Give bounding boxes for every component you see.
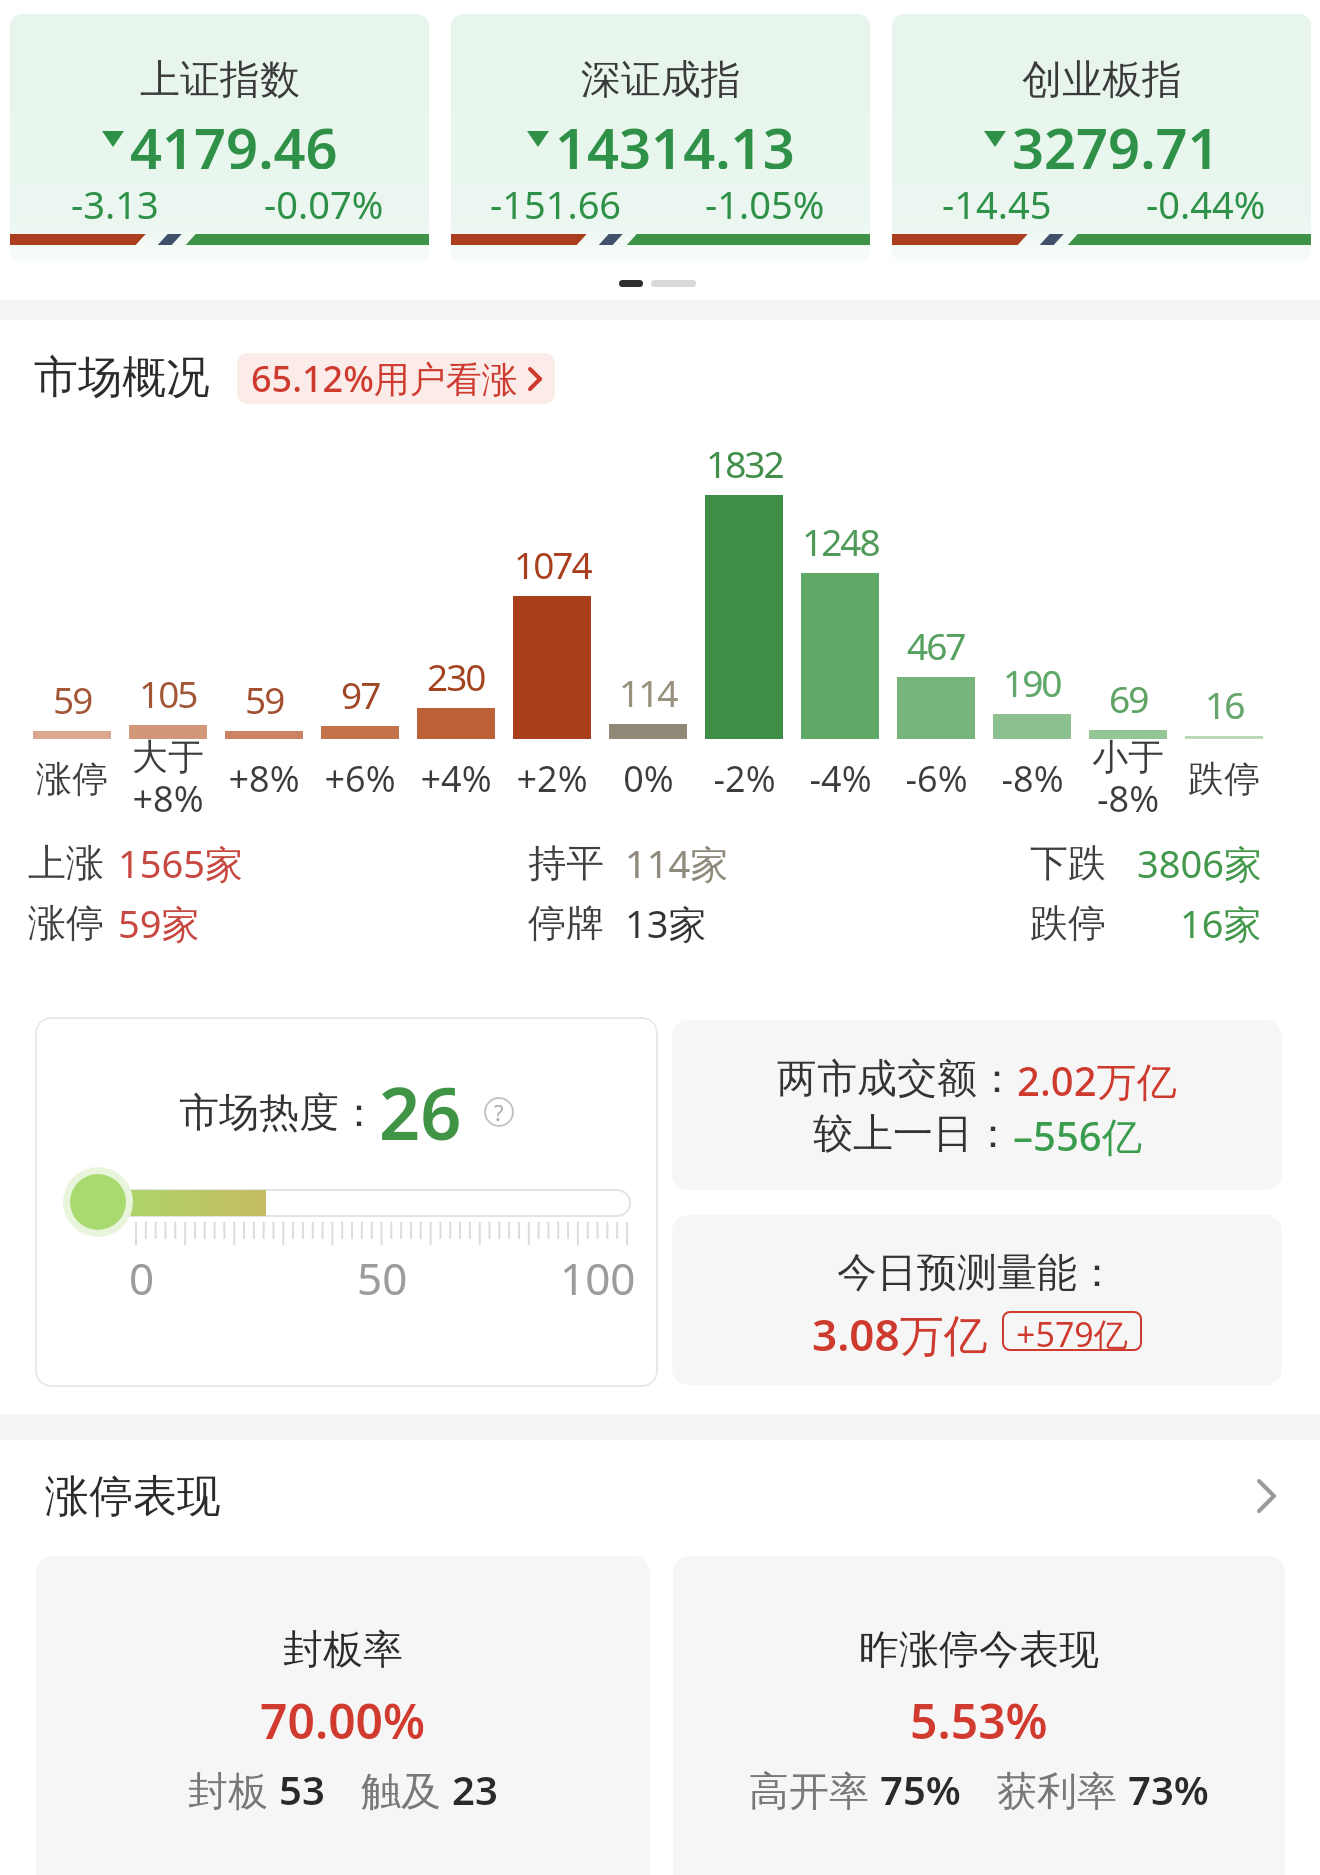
staticText: 73% — [1128, 1762, 1209, 1812]
staticText: -151.66 — [490, 178, 622, 224]
staticText: 16家 — [1180, 897, 1262, 949]
staticText: 下跌 — [1030, 839, 1106, 887]
staticText: -2% — [713, 754, 776, 803]
staticText: 1248 — [802, 516, 879, 566]
staticText: 市场概况 — [34, 350, 210, 405]
staticText: 获利率 — [997, 1762, 1128, 1812]
staticText: –556亿 — [1013, 1108, 1142, 1158]
staticText: 59 — [245, 674, 284, 724]
staticText: 65.12%用户看涨 — [251, 354, 518, 403]
staticText: 114 — [619, 667, 677, 717]
button[interactable]: 涨停表现 — [0, 1466, 1320, 1526]
staticText: +4% — [420, 754, 492, 803]
button[interactable]: 创业板指 — [892, 14, 1311, 263]
staticText: 涨停表现 — [45, 1469, 221, 1524]
staticText: 105 — [139, 668, 197, 718]
staticText: 封板率 — [283, 1624, 403, 1674]
staticText: 昨涨停今表现 — [859, 1624, 1099, 1674]
staticText: 190 — [1003, 657, 1061, 707]
staticText: 69 — [1109, 673, 1148, 723]
staticText: 23 — [452, 1762, 498, 1812]
staticText: 3279.71 — [1012, 109, 1220, 169]
button[interactable]: 上证指数 — [10, 14, 429, 263]
staticText: 上证指数 — [140, 54, 300, 100]
button[interactable]: 市场热度： — [35, 1017, 658, 1387]
staticText: 26 — [379, 1063, 462, 1161]
staticText: -14.45 — [942, 178, 1052, 224]
staticText: 较上一日： — [813, 1108, 1013, 1158]
staticText: 70.00% — [260, 1688, 426, 1748]
staticText: 0% — [623, 754, 674, 803]
staticText: -0.44% — [1146, 178, 1266, 224]
staticText: 14314.13 — [555, 109, 795, 169]
staticText: 高开率 — [749, 1762, 880, 1812]
staticText: -0.07% — [264, 178, 384, 224]
staticText: 两市成交额： — [777, 1053, 1017, 1103]
staticText: 4179.46 — [130, 109, 338, 169]
staticText: 跌停 — [1188, 756, 1260, 801]
staticText: +2% — [516, 754, 588, 803]
button[interactable]: 昨涨停今表现 — [673, 1556, 1285, 1875]
staticText: -8% — [1001, 754, 1064, 803]
staticText: 97 — [341, 669, 380, 719]
staticText: 深证成指 — [581, 54, 741, 100]
staticText: 1074 — [514, 539, 591, 589]
staticText: 0 — [129, 1248, 155, 1308]
staticText: 市场热度： — [179, 1087, 379, 1137]
staticText: +6% — [324, 754, 396, 803]
staticText: -1.05% — [705, 178, 825, 224]
staticText: 触及 — [361, 1762, 452, 1812]
staticText: 53 — [279, 1762, 325, 1812]
staticText: 持平 — [528, 839, 604, 887]
staticText: -3.13 — [71, 178, 159, 224]
staticText: 封板 — [188, 1762, 279, 1812]
staticText: ? — [494, 1097, 504, 1127]
staticText: 3.08万亿 — [812, 1304, 988, 1358]
staticText: 1565家 — [118, 837, 243, 889]
button[interactable]: 今日预测量能： — [672, 1215, 1282, 1385]
staticText: 今日预测量能： — [837, 1247, 1117, 1297]
staticText: 5.53% — [910, 1688, 1048, 1748]
staticText: 大于 +8% — [132, 734, 204, 823]
staticText: +8% — [228, 754, 300, 803]
staticText: 涨停 — [36, 756, 108, 801]
staticText: 50 — [357, 1248, 408, 1308]
staticText: 小于 -8% — [1092, 734, 1164, 823]
staticText: 230 — [427, 651, 485, 701]
staticText: 上涨 — [28, 839, 104, 887]
staticText: 114家 — [625, 837, 729, 889]
staticText: 75% — [880, 1762, 961, 1812]
staticText: +579亿 — [1016, 1311, 1128, 1351]
button[interactable]: 65.12%用户看涨 — [237, 353, 555, 404]
staticText: 100 — [560, 1248, 636, 1308]
staticText: 467 — [907, 620, 965, 670]
staticText: 创业板指 — [1022, 54, 1182, 100]
staticText: 跌停 — [1030, 899, 1106, 947]
button[interactable]: 封板率 — [36, 1556, 650, 1875]
button[interactable]: 两市成交额： — [672, 1020, 1282, 1190]
staticText: 2.02万亿 — [1017, 1053, 1177, 1103]
staticText: 13家 — [625, 897, 707, 949]
staticText: 59家 — [118, 897, 200, 949]
staticText: 涨停 — [28, 899, 104, 947]
staticText: -6% — [905, 754, 968, 803]
staticText: 1832 — [706, 438, 783, 488]
staticText: 16 — [1205, 679, 1244, 729]
staticText: 停牌 — [528, 899, 604, 947]
staticText: -4% — [809, 754, 872, 803]
button[interactable]: 深证成指 — [451, 14, 870, 263]
staticText: 3806家 — [1137, 837, 1262, 889]
staticText: 59 — [53, 674, 92, 724]
